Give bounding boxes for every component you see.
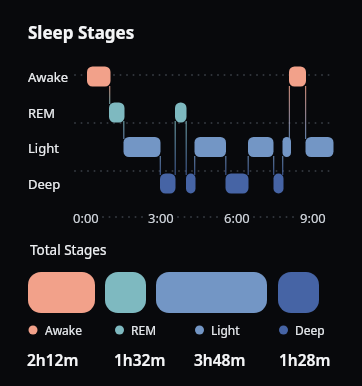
- button[interactable]: [28, 272, 95, 313]
- staticText: REM: [131, 322, 157, 338]
- staticText: Sleep Stages: [28, 21, 135, 44]
- staticText: REM: [28, 104, 56, 122]
- staticText: Deep: [295, 322, 325, 338]
- button[interactable]: [192, 321, 248, 339]
- button[interactable]: [26, 321, 86, 339]
- staticText: Total Stages: [30, 241, 107, 259]
- staticText: 2h12m: [27, 349, 79, 369]
- staticText: Light: [28, 139, 59, 157]
- button[interactable]: [276, 321, 332, 339]
- staticText: Deep: [28, 175, 61, 193]
- staticText: 0:00: [73, 209, 99, 227]
- staticText: 3h48m: [194, 349, 246, 369]
- button[interactable]: [112, 321, 160, 339]
- staticText: 1h32m: [114, 349, 166, 369]
- button[interactable]: [278, 272, 319, 313]
- staticText: Light: [211, 322, 240, 338]
- staticText: 9:00: [300, 209, 326, 227]
- staticText: 1h28m: [279, 349, 331, 369]
- staticText: Awake: [28, 68, 69, 86]
- button[interactable]: [105, 272, 146, 313]
- button[interactable]: [156, 272, 267, 313]
- staticText: 6:00: [224, 209, 250, 227]
- staticText: 3:00: [148, 209, 174, 227]
- staticText: Awake: [45, 322, 83, 338]
